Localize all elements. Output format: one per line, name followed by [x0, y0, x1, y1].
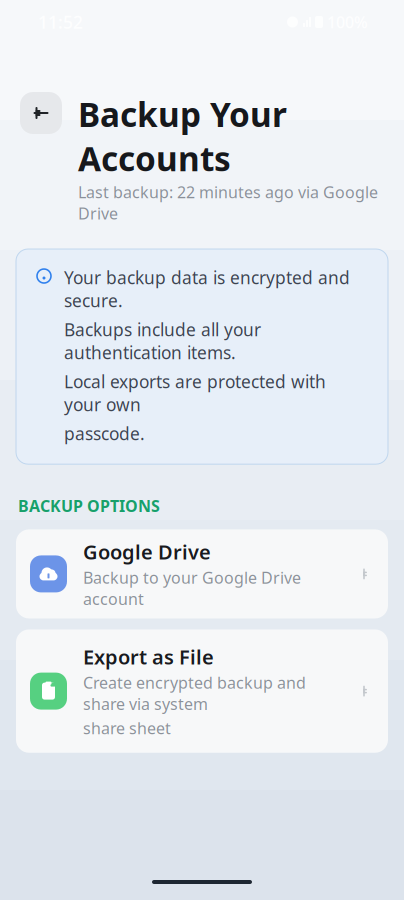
staticText: passcode.: [64, 422, 145, 445]
staticText: Your backup data is encrypted and secure…: [64, 266, 350, 312]
button[interactable]: Google Drive: [16, 529, 388, 618]
staticText: share sheet: [83, 717, 171, 739]
staticText: Google Drive: [83, 538, 211, 565]
staticText: Last backup: 22 minutes ago via Google D…: [78, 181, 378, 224]
staticText: Export as File: [83, 643, 214, 670]
staticText: Backup Your Accounts: [78, 92, 287, 180]
staticText: Local exports are protected with your ow…: [64, 370, 326, 416]
staticText: Create encrypted backup and share via sy…: [83, 672, 306, 714]
staticText: BACKUP OPTIONS: [18, 495, 160, 516]
staticText: Backup to your Google Drive account: [83, 567, 301, 609]
staticText: Backups include all your authentication …: [64, 318, 261, 364]
button[interactable]: Back: [20, 92, 62, 134]
button[interactable]: Export as File: [16, 629, 388, 753]
